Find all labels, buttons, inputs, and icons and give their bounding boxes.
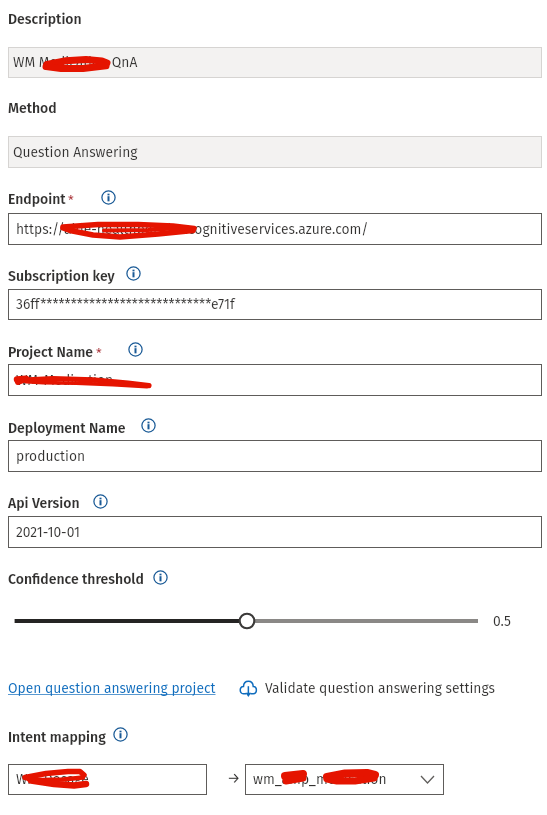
button[interactable]: Info [101,190,116,205]
button[interactable]: Validate settings [239,679,257,697]
staticText: * [68,193,74,209]
staticText: → [227,769,241,787]
button[interactable]: Info [93,494,108,509]
staticText: 2021-10-01 [16,524,80,541]
button[interactable]: Question Answering [8,136,542,168]
button[interactable]: Info [113,727,128,742]
button[interactable]: WM-Dosage [8,764,207,795]
button[interactable]: Info [128,342,143,357]
button[interactable]: Confidence threshold slider [8,609,488,633]
button[interactable]: WM Medication QnA [8,47,542,78]
staticText: WM-Medication [16,372,114,389]
staticText: Project Name [8,344,94,361]
staticText: 36ff****************************e71f [16,296,235,313]
staticText: production [16,448,86,465]
staticText: Deployment Name [8,420,126,437]
button[interactable]: 36ff****************************e71f [8,289,542,320]
staticText: Open question answering project [8,680,216,697]
staticText: WM Medication QnA [13,54,138,71]
staticText: * [96,346,102,362]
staticText: Api Version [8,495,80,512]
button[interactable]: Info [153,570,168,585]
button[interactable]: Open question answering project [7,678,215,698]
button[interactable]: Info [126,266,141,281]
button[interactable]: production [8,440,542,472]
staticText: Subscription key [8,268,115,285]
button[interactable]: https://aide-healthbot-dev.cognitiveserv… [8,213,542,245]
staticText: WM-Dosage [16,771,89,788]
staticText: Confidence threshold [8,571,144,588]
button[interactable]: Info [141,418,156,433]
staticText: Endpoint [8,191,66,208]
staticText: 0.5 [493,613,511,630]
button[interactable]: WM-Medication [8,364,542,396]
staticText: Description [8,11,82,28]
staticText: wm_amp_medication [253,771,387,788]
staticText: Validate question answering settings [265,680,495,697]
button[interactable]: wm_amp_medication [245,764,444,795]
staticText: Intent mapping [8,729,106,746]
staticText: Method [8,100,57,117]
button[interactable]: Validate settings [239,677,495,699]
button[interactable]: 2021-10-01 [8,516,542,548]
staticText: https://aide-healthbot-dev.cognitiveserv… [16,221,369,238]
staticText: Question Answering [13,144,138,161]
